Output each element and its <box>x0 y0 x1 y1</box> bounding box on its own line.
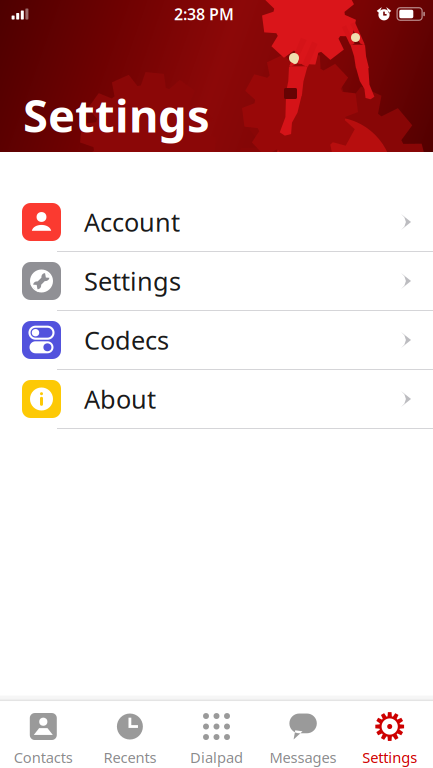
button[interactable]: Recents <box>87 695 173 768</box>
button[interactable]: Codecs <box>0 311 433 370</box>
button[interactable]: Contacts <box>0 695 87 768</box>
button[interactable]: Settings <box>0 252 433 311</box>
staticText: Dialpad <box>190 747 243 767</box>
staticText: 2:38 PM <box>174 3 234 25</box>
staticText: Settings <box>23 85 210 145</box>
button[interactable]: Settings <box>346 695 433 768</box>
button[interactable]: Dialpad <box>173 695 260 768</box>
staticText: Codecs <box>84 323 169 357</box>
staticText: Settings <box>362 747 417 767</box>
button[interactable]: Account <box>0 193 433 252</box>
button[interactable]: Messages <box>260 695 346 768</box>
staticText: Contacts <box>14 747 73 767</box>
staticText: Recents <box>103 747 156 767</box>
staticText: Settings <box>84 264 181 298</box>
staticText: Messages <box>270 747 337 767</box>
button[interactable]: About <box>0 370 433 429</box>
staticText: About <box>84 382 156 416</box>
staticText: Account <box>84 205 180 239</box>
